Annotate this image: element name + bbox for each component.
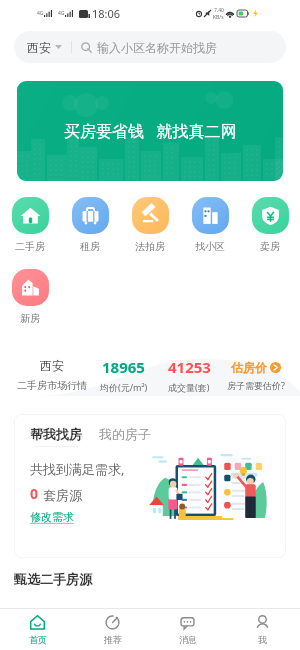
button[interactable]: 西安 [14, 358, 89, 392]
staticText: 西安 [40, 358, 64, 373]
staticText: 买房要省钱 就找真二网 [64, 120, 237, 142]
staticText: 首页 [29, 634, 47, 645]
button[interactable]: 首页 [0, 609, 75, 650]
staticText: 4G [58, 10, 65, 17]
staticText: 房子需要估价? [227, 379, 285, 391]
button[interactable]: 买房要省钱 就找真二网 [17, 81, 283, 181]
staticText: 18:06 [92, 6, 121, 21]
staticText: 消息 [179, 634, 197, 645]
staticText: 4G [37, 10, 44, 17]
button[interactable]: 租房 [60, 197, 120, 253]
staticText: 新房 [20, 312, 40, 325]
staticText: 均价(元/m²) [100, 381, 148, 393]
staticText: 成交量(套) [168, 381, 210, 393]
staticText: 0 [30, 484, 39, 503]
staticText: 二手房市场行情 [17, 379, 87, 392]
staticText: 西安 [27, 40, 51, 55]
button[interactable]: 新房 [0, 269, 60, 325]
button[interactable]: 找小区 [180, 197, 240, 253]
staticText: 找小区 [195, 240, 225, 253]
staticText: 甄选二手房源 [14, 571, 92, 587]
button[interactable]: 18965 [89, 357, 158, 393]
staticText: 租房 [80, 240, 100, 253]
staticText: 卖房 [260, 240, 280, 253]
button[interactable]: 帮我找房 [30, 426, 82, 447]
staticText: 7.40 [214, 7, 224, 14]
button[interactable]: 法拍房 [120, 197, 180, 253]
staticText: 输入小区名称开始找房 [97, 40, 217, 55]
button[interactable]: 消息 [150, 609, 225, 650]
button[interactable]: 我 [225, 609, 300, 650]
button[interactable]: 估房价 [220, 360, 292, 391]
button[interactable]: 二手房 [0, 197, 60, 253]
staticText: 41253 [168, 357, 211, 377]
button[interactable]: 修改需求 [30, 510, 74, 524]
button[interactable]: 西安 [14, 31, 286, 63]
staticText: 帮我找房 [30, 426, 82, 442]
staticText: 法拍房 [135, 240, 165, 253]
staticText: 18965 [102, 357, 145, 377]
button[interactable]: 41253 [158, 357, 220, 393]
staticText: 估房价 [231, 360, 267, 375]
button[interactable]: 推荐 [75, 609, 150, 650]
staticText: 我 [258, 634, 267, 645]
staticText: 推荐 [104, 634, 122, 645]
staticText: 共找到满足需求, [30, 460, 125, 478]
button[interactable]: 卖房 [240, 197, 300, 253]
button[interactable]: 我的房子 [99, 426, 151, 442]
staticText: 二手房 [15, 240, 45, 253]
staticText: 套房源 [43, 487, 82, 503]
staticText: KB/s [213, 14, 224, 21]
